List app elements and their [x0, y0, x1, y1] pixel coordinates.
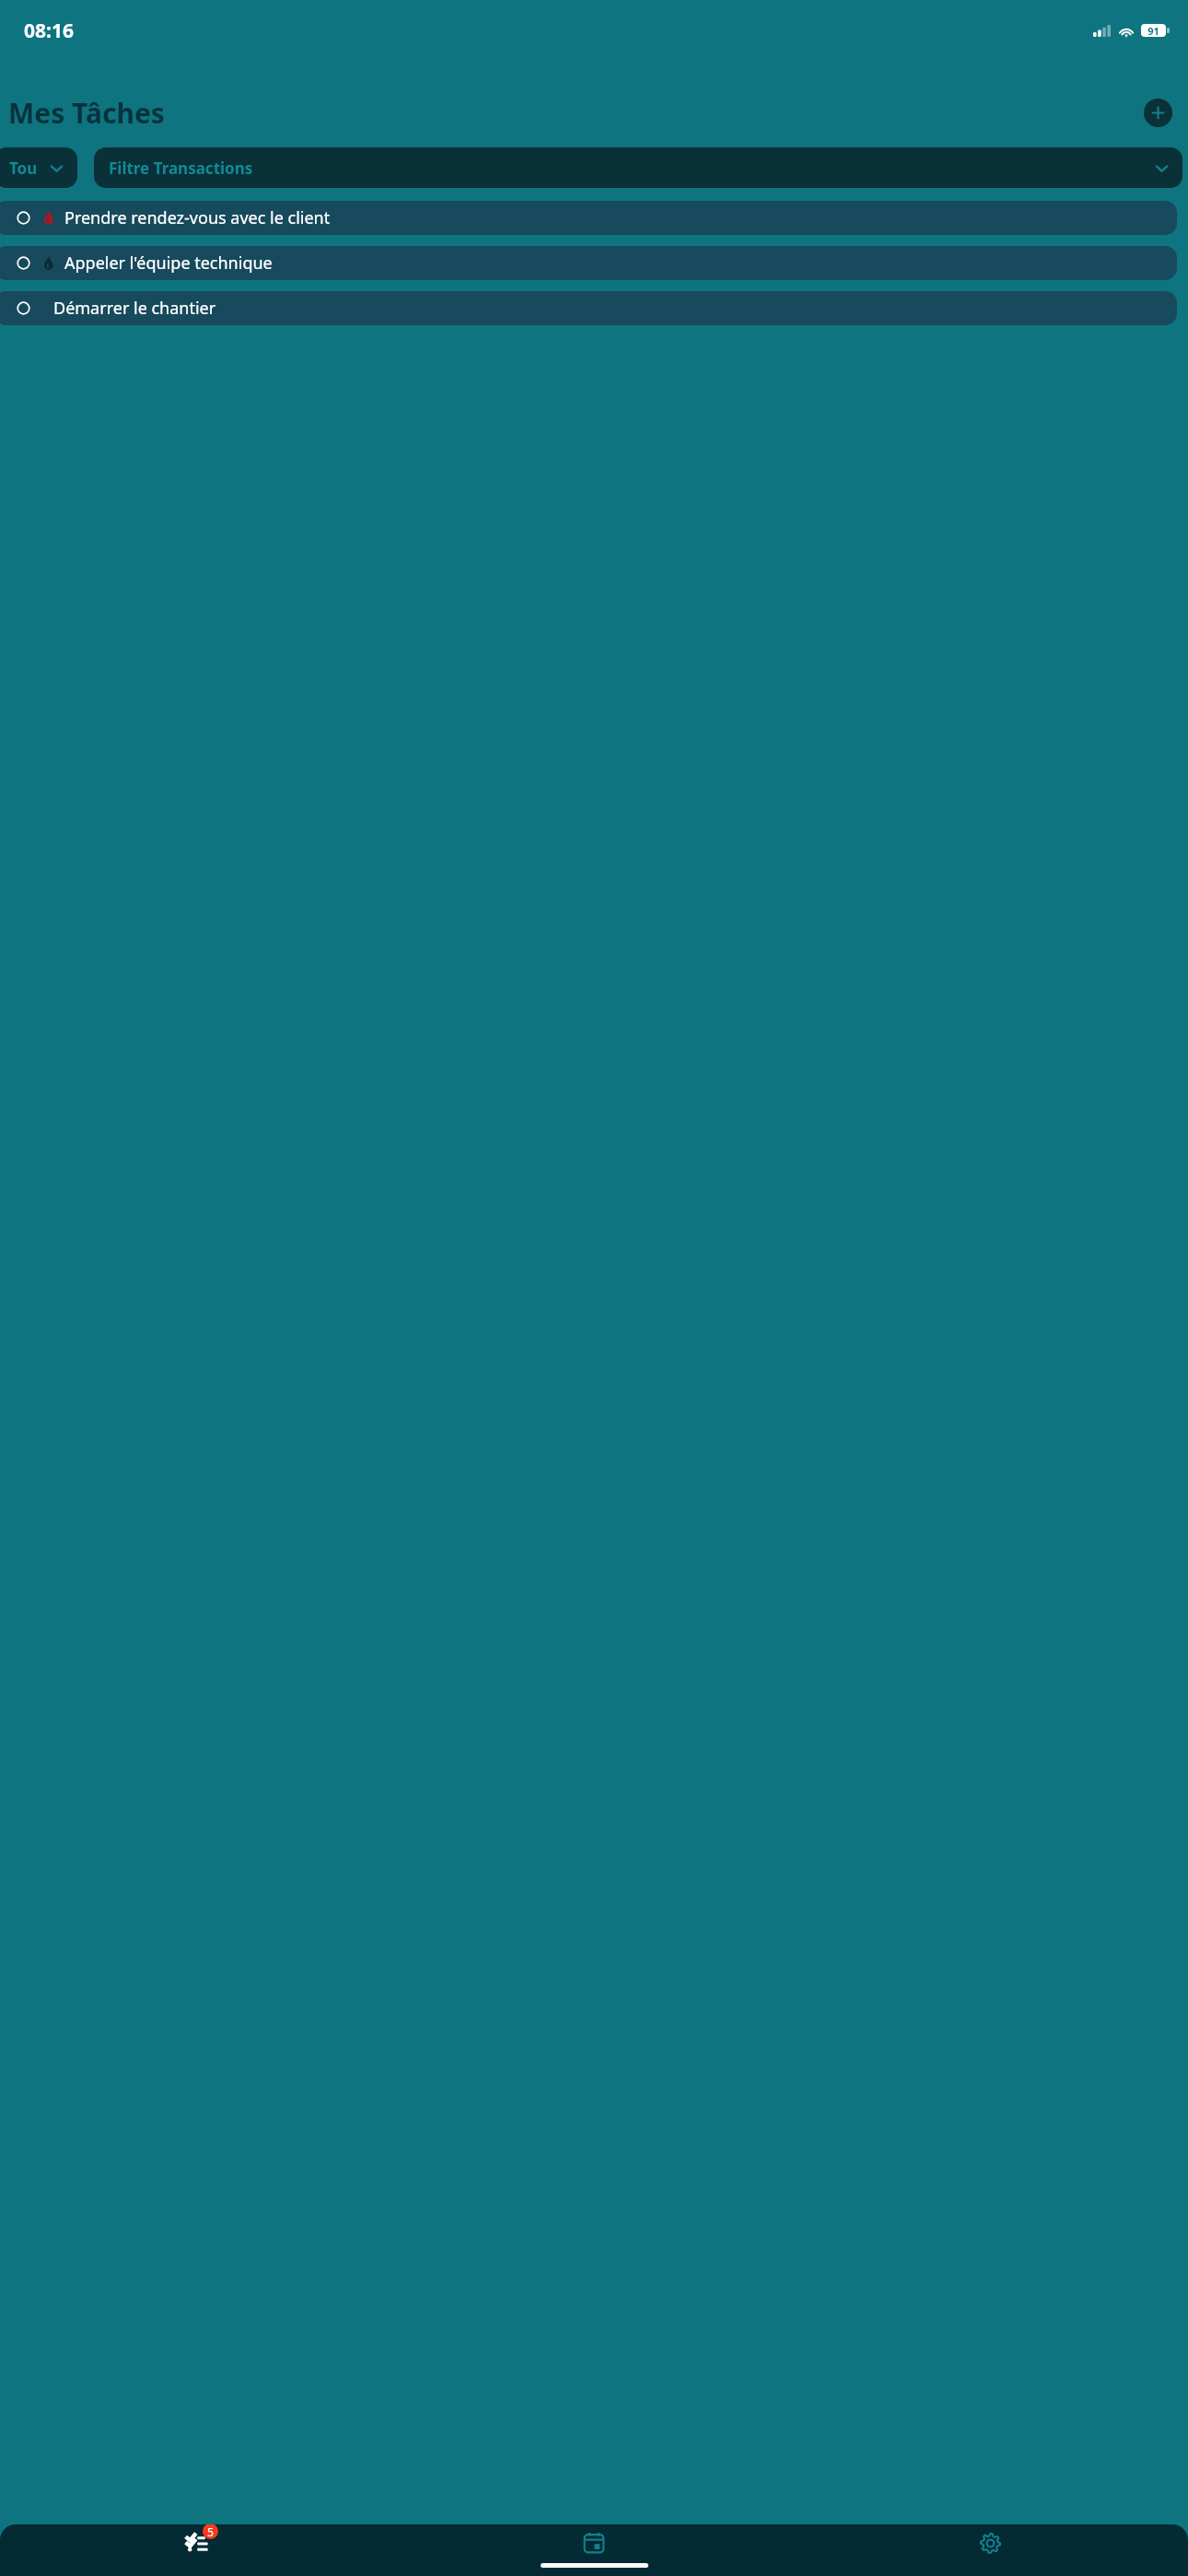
staticText: 08:16 [24, 18, 74, 44]
button[interactable]: Tâches [0, 2524, 396, 2561]
staticText: Toutes [9, 158, 41, 179]
button[interactable]: Toutes [0, 147, 77, 188]
staticText: 5 [207, 2524, 214, 2539]
staticText: Appeler l'équipe technique [64, 252, 273, 275]
staticText: Filtre Transactions [109, 158, 253, 179]
staticText: Mes Tâches [8, 94, 165, 132]
staticText: 91 [1147, 24, 1159, 37]
button[interactable]: Paramètres [792, 2524, 1188, 2561]
button[interactable]: Appeler l'équipe technique [0, 246, 1177, 280]
staticText: Prendre rendez-vous avec le client [64, 206, 331, 229]
button[interactable]: Ajouter une tâche [1144, 99, 1172, 127]
button[interactable]: Démarrer le chantier [0, 291, 1177, 325]
button[interactable]: Calendrier [396, 2524, 792, 2561]
button[interactable]: Filtre Transactions [94, 147, 1182, 188]
button[interactable]: Prendre rendez-vous avec le client [0, 201, 1177, 235]
staticText: Démarrer le chantier [53, 297, 216, 320]
